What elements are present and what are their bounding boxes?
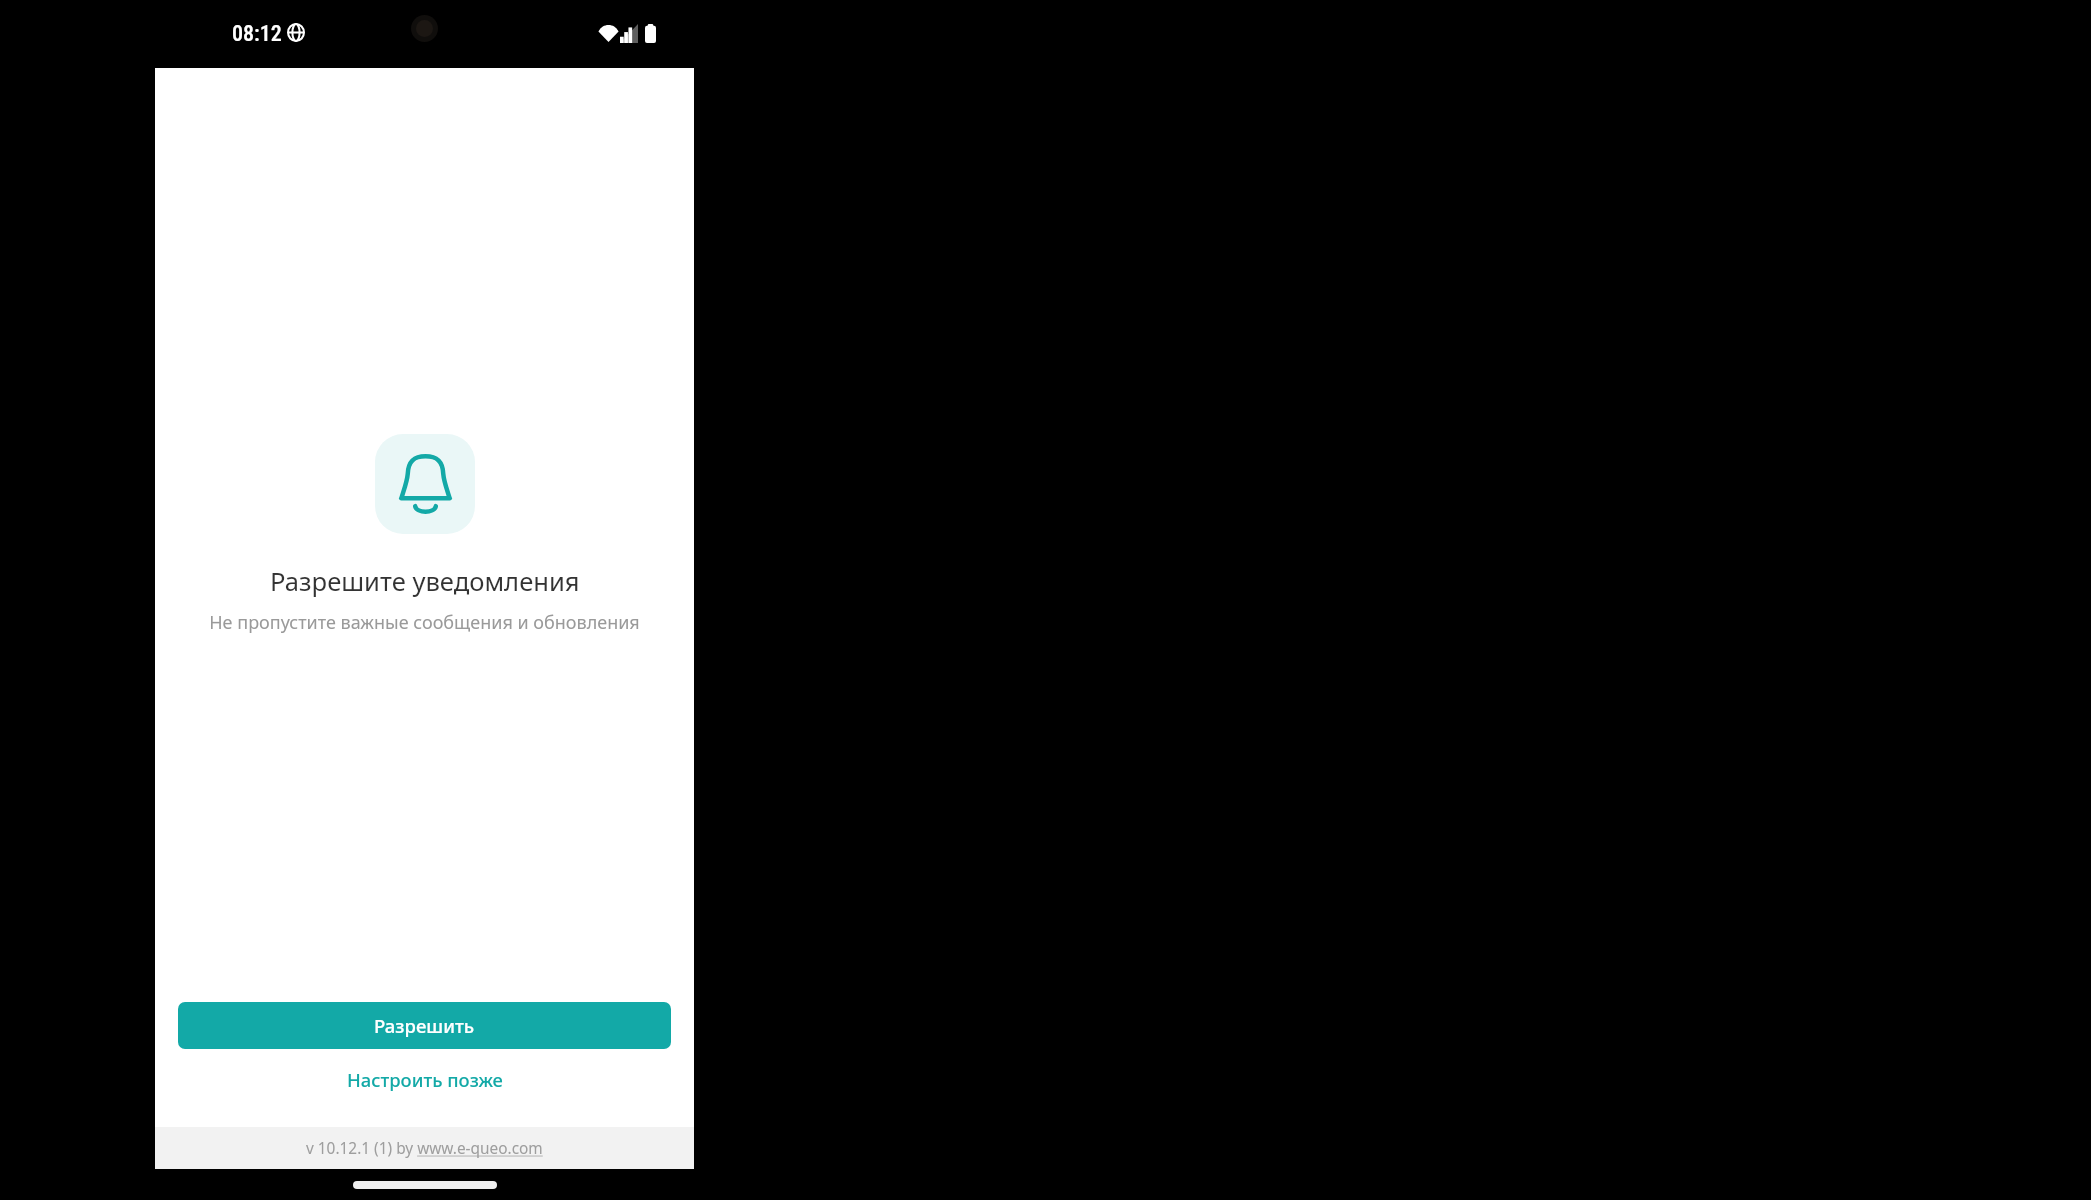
staticText: 08:12 xyxy=(232,21,282,47)
staticText: Не пропустите важные сообщения и обновле… xyxy=(209,610,640,635)
button[interactable]: v 10.12.1 (1) by www.e-queo.com xyxy=(155,1127,694,1169)
other: Battery xyxy=(645,24,656,43)
staticText: Разрешите уведомления xyxy=(270,564,580,599)
staticText: Настроить позже xyxy=(347,1067,503,1092)
button[interactable]: Настроить позже xyxy=(155,1053,694,1105)
button[interactable]: Разрешить xyxy=(178,1002,671,1049)
other: Mobile signal xyxy=(620,24,638,43)
staticText: v 10.12.1 (1) by www.e-queo.com xyxy=(306,1138,543,1159)
other: Language xyxy=(287,23,305,42)
other: Wi-Fi xyxy=(598,24,619,42)
staticText: Разрешить xyxy=(374,1013,475,1038)
